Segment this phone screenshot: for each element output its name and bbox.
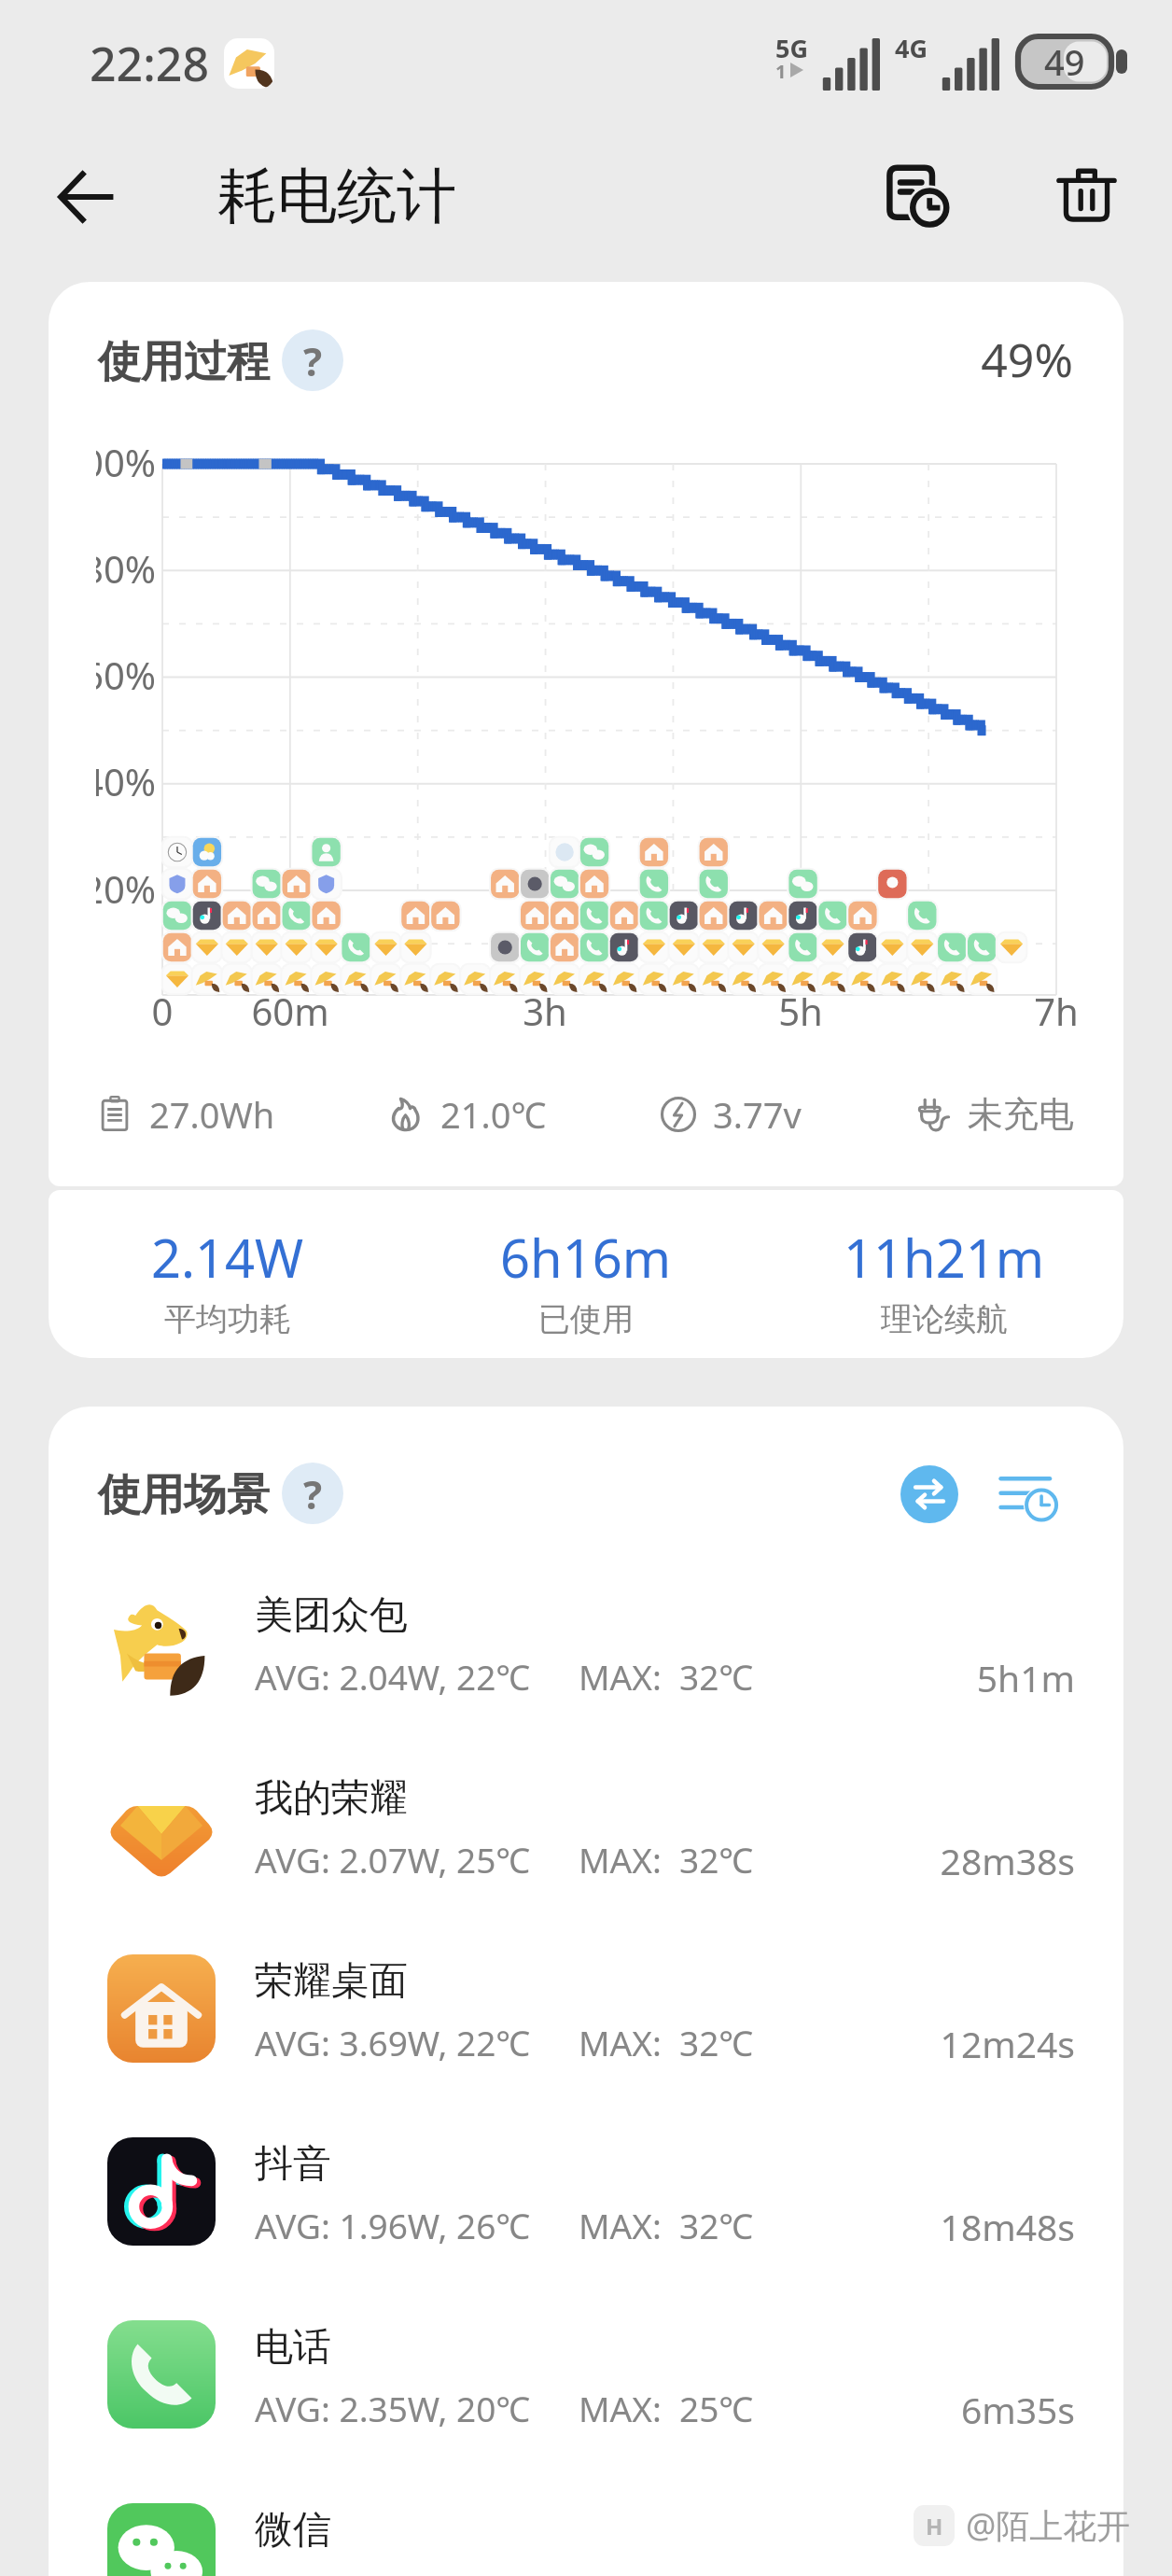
staticText: MAX: [579, 1836, 662, 1883]
staticText: 18m48s [758, 2202, 1075, 2251]
staticText: AVG: 1.96W, 26℃ [255, 2202, 531, 2248]
staticText: 32℃ [679, 2202, 754, 2248]
staticText: 49 [1044, 37, 1085, 86]
staticText: 6h16m [500, 1222, 672, 1293]
staticText: 未充电 [968, 1092, 1074, 1137]
button[interactable]: 美团众包 [49, 1561, 1123, 1743]
staticText: AVG: 2.07W, 25℃ [255, 1836, 531, 1883]
button[interactable]: 电话 [49, 2292, 1123, 2475]
staticText: 1 [775, 59, 787, 84]
staticText: 5h1m [758, 1653, 1075, 1702]
button[interactable]: 微信 [49, 2475, 1123, 2576]
staticText: 32℃ [679, 1653, 754, 1700]
staticText: 0 [88, 986, 237, 1036]
button[interactable]: History [873, 150, 963, 240]
staticText: 25℃ [679, 2385, 754, 2431]
staticText: AVG: 2.35W, 20℃ [255, 2385, 531, 2431]
staticText: 使用场景 [98, 1468, 270, 1522]
staticText: 5h [726, 986, 875, 1036]
staticText: 60% [49, 650, 156, 700]
button[interactable]: Help [282, 1463, 343, 1524]
staticText: 电话 [255, 2323, 331, 2372]
staticText: 4G [895, 31, 928, 65]
staticText: 抖音 [255, 2140, 331, 2189]
button[interactable]: 抖音 [49, 2109, 1123, 2292]
staticText: MAX: [579, 1653, 662, 1700]
staticText: 3h [470, 986, 620, 1036]
button[interactable]: Help [282, 329, 343, 391]
staticText: 2.14W [151, 1222, 304, 1293]
staticText: 32℃ [679, 2019, 754, 2065]
button[interactable]: 2.14W [49, 1222, 407, 1339]
staticText: MAX: [579, 2385, 662, 2431]
staticText: 微信 [255, 2506, 331, 2555]
staticText: 28m38s [758, 1836, 1075, 1885]
staticText: 22:28 [90, 32, 209, 95]
button[interactable]: Delete [1041, 149, 1131, 239]
button[interactable]: Switch order [892, 1457, 967, 1532]
staticText: 27.0Wh [149, 1090, 275, 1139]
staticText: 理论续航 [881, 1299, 1008, 1339]
staticText: 60m [216, 986, 365, 1036]
staticText: MAX: [579, 2019, 662, 2065]
staticText: 20% [49, 863, 156, 914]
button[interactable]: Sort by time [991, 1457, 1066, 1532]
staticText: AVG: 3.69W, 22℃ [255, 2019, 531, 2065]
button[interactable]: 我的荣耀 [49, 1743, 1123, 1926]
staticText: 7h [982, 986, 1123, 1036]
staticText: AVG: 2.04W, 22℃ [255, 1653, 531, 1700]
staticText: 荣耀桌面 [255, 1957, 408, 2006]
staticText: ? [303, 1467, 323, 1520]
button[interactable]: Back [45, 155, 129, 239]
staticText: H [926, 2511, 943, 2541]
staticText: 5G [775, 31, 808, 65]
staticText: 美团众包 [255, 1591, 408, 1640]
staticText: 平均功耗 [164, 1299, 291, 1339]
staticText: 3.77v [713, 1090, 802, 1139]
staticText: 49% [795, 328, 1073, 391]
staticText: 耗电统计 [217, 159, 456, 234]
button[interactable]: 11h21m [765, 1222, 1123, 1339]
staticText: 100% [49, 437, 156, 487]
staticText: 40% [49, 756, 156, 806]
staticText: ? [303, 334, 323, 387]
staticText: @陌上花开 [966, 2502, 1131, 2548]
staticText: 21.0℃ [440, 1090, 547, 1139]
staticText: 已使用 [538, 1299, 634, 1339]
staticText: 我的荣耀 [255, 1774, 408, 1823]
staticText: 11h21m [844, 1222, 1045, 1293]
staticText: 80% [49, 543, 156, 594]
staticText: 32℃ [679, 1836, 754, 1883]
staticText: MAX: [579, 2202, 662, 2248]
staticText: 12m24s [758, 2019, 1075, 2068]
staticText: 使用过程 [98, 335, 270, 389]
button[interactable]: 6h16m [407, 1222, 765, 1339]
button[interactable]: 荣耀桌面 [49, 1926, 1123, 2109]
staticText: 6m35s [758, 2385, 1075, 2434]
